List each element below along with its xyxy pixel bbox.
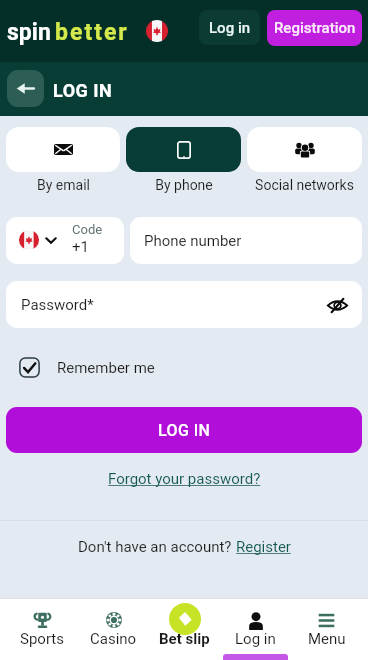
staticText: Register	[236, 538, 291, 556]
button[interactable]: Remember me	[19, 357, 155, 378]
staticText: Sports	[20, 630, 64, 648]
button[interactable]	[126, 127, 241, 172]
button[interactable]: Register	[236, 538, 291, 556]
staticText: +1	[72, 238, 89, 256]
staticText: Casino	[90, 630, 137, 648]
staticText: Remember me	[57, 359, 155, 377]
button[interactable]: Registration	[267, 10, 362, 46]
button[interactable]	[247, 127, 362, 172]
staticText: Menu	[308, 630, 346, 648]
staticText: Social networks	[255, 177, 354, 193]
staticText: LOG IN	[53, 80, 113, 101]
button[interactable]	[6, 127, 120, 172]
button[interactable]: Code	[6, 217, 124, 264]
button[interactable]: Log in	[220, 599, 291, 660]
button[interactable]: Change country	[146, 20, 168, 42]
button[interactable]: Password*	[6, 281, 362, 328]
staticText: Log in	[235, 630, 276, 648]
staticText: better	[55, 19, 129, 46]
staticText: LOG IN	[158, 421, 211, 440]
button[interactable]: Bet slip	[149, 599, 220, 660]
button[interactable]: Sports	[6, 599, 78, 660]
staticText: Bet slip	[159, 630, 210, 648]
staticText: Code	[72, 222, 103, 237]
button[interactable]: Back	[7, 70, 44, 107]
button[interactable]: Forgot your password?	[108, 470, 261, 488]
button[interactable]: Menu	[291, 599, 362, 660]
staticText: By email	[37, 177, 90, 193]
button[interactable]: Casino	[78, 599, 149, 660]
staticText: spin	[7, 19, 51, 46]
button[interactable]: LOG IN	[6, 407, 362, 453]
button[interactable]: Log in	[199, 10, 260, 45]
staticText: Phone number	[144, 232, 242, 250]
staticText: Log in	[209, 19, 251, 37]
staticText: By phone	[155, 177, 213, 193]
staticText: Registration	[274, 19, 356, 37]
staticText: Don't have an account?	[78, 538, 236, 556]
staticText: Password*	[21, 296, 94, 314]
staticText: Forgot your password?	[108, 470, 261, 488]
button[interactable]: Phone number	[130, 217, 362, 264]
button[interactable]: Show password	[324, 292, 350, 318]
button[interactable]: spin	[7, 19, 129, 46]
